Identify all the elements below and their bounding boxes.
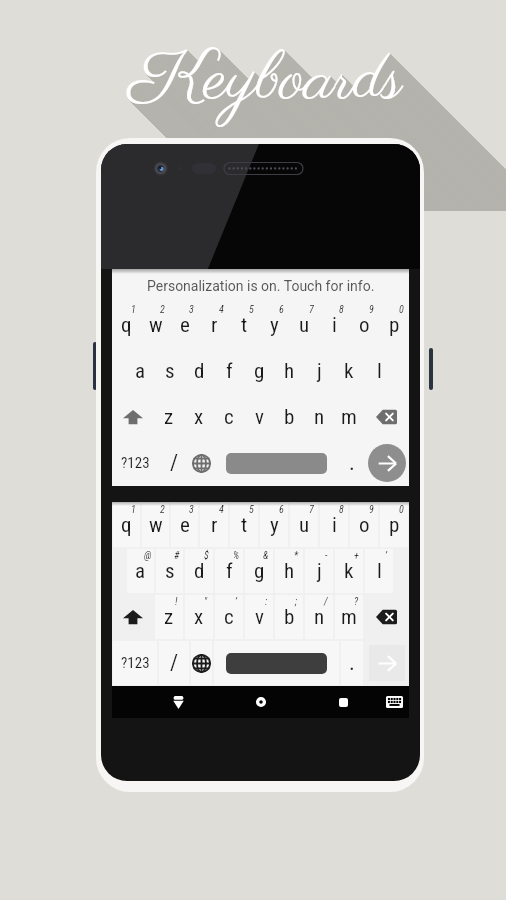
staticText: b [284,405,295,430]
button[interactable]: v [245,395,273,439]
button[interactable]: t [230,503,258,547]
button[interactable]: i [320,503,348,547]
button[interactable]: c [215,395,243,439]
button[interactable]: Recent apps [321,686,366,718]
staticText: 3 [189,304,194,316]
staticText: s [165,559,175,584]
button[interactable]: v [245,595,273,639]
button[interactable]: j [305,349,333,393]
staticText: ? [354,596,359,608]
button[interactable]: p [380,303,408,347]
button[interactable]: m [335,595,363,639]
staticText: i [332,313,337,338]
button[interactable]: n [305,395,333,439]
button[interactable]: j [305,549,333,593]
button[interactable]: z [155,595,183,639]
staticText: # [174,550,180,562]
button[interactable]: u [290,503,318,547]
button[interactable]: c [215,595,243,639]
button[interactable]: k [335,549,363,593]
button[interactable]: l [365,349,393,393]
staticText: j [317,359,322,384]
staticText: c [224,605,234,630]
button[interactable]: x [185,595,213,639]
button[interactable]: z [155,395,183,439]
button[interactable]: q [113,503,140,547]
staticText: e [180,313,190,338]
staticText: 9 [369,304,374,316]
button[interactable]: m [335,395,363,439]
button[interactable]: Shift [112,594,154,640]
button[interactable]: i [320,303,348,347]
button[interactable]: e [171,503,198,547]
button[interactable]: s [156,549,183,593]
button[interactable]: p [380,503,408,547]
button[interactable]: . [341,641,363,685]
button[interactable]: n [305,595,333,639]
button[interactable]: o [350,303,378,347]
button[interactable]: / [159,441,189,485]
staticText: y [270,513,279,538]
button[interactable]: Change keyboard language [191,441,212,485]
staticText: 8 [339,504,344,516]
button[interactable]: Change keyboard language [191,641,212,685]
button[interactable]: u [290,303,318,347]
button[interactable]: g [245,349,273,393]
button[interactable]: b [275,595,303,639]
button[interactable]: Enter [364,640,409,686]
staticText: m [341,405,357,430]
button[interactable]: e [171,303,198,347]
button[interactable]: Shift [112,394,154,440]
button[interactable]: r [200,503,228,547]
button[interactable]: Home [238,686,283,718]
button[interactable]: ?123 [113,641,157,685]
button[interactable]: b [275,395,303,439]
button[interactable] [214,441,339,485]
staticText: l [377,559,382,584]
button[interactable]: q [113,303,140,347]
button[interactable]: k [335,349,363,393]
staticText: * [294,550,299,562]
button[interactable]: a [127,349,154,393]
staticText: z [164,405,174,430]
button[interactable]: r [200,303,228,347]
button[interactable]: ?123 [113,441,157,485]
staticText: f [226,359,233,384]
button[interactable]: h [275,549,303,593]
button[interactable]: t [230,303,258,347]
button[interactable]: a [127,549,154,593]
button[interactable]: l [365,549,393,593]
button[interactable]: s [156,349,183,393]
staticText: @ [144,550,152,562]
button[interactable]: d [185,349,213,393]
button[interactable]: w [142,503,169,547]
button[interactable]: f [215,349,243,393]
button[interactable]: w [142,303,169,347]
staticText: k [344,559,354,584]
button[interactable]: Hide keyboard [156,686,201,718]
button[interactable]: Enter [364,440,409,486]
button[interactable]: Personalization is on. Touch for info. [112,269,409,302]
button[interactable] [214,641,339,685]
button[interactable]: . [341,441,363,485]
button[interactable]: o [350,503,378,547]
button[interactable]: x [185,395,213,439]
button[interactable]: f [215,549,243,593]
staticText: d [194,559,205,584]
staticText: v [255,605,264,630]
staticText: ’ [385,550,387,562]
button[interactable]: d [185,549,213,593]
button[interactable]: h [275,349,303,393]
button[interactable]: y [260,503,288,547]
staticText: ?123 [121,454,150,472]
button[interactable]: g [245,549,273,593]
button[interactable]: Backspace [364,394,409,440]
staticText: 5 [249,304,254,316]
button[interactable]: y [260,303,288,347]
staticText: x [194,405,204,430]
button[interactable]: Switch keyboard [373,686,415,718]
staticText: x [194,605,204,630]
button[interactable]: / [159,641,189,685]
button[interactable]: Backspace [364,594,409,640]
staticText: y [270,313,279,338]
